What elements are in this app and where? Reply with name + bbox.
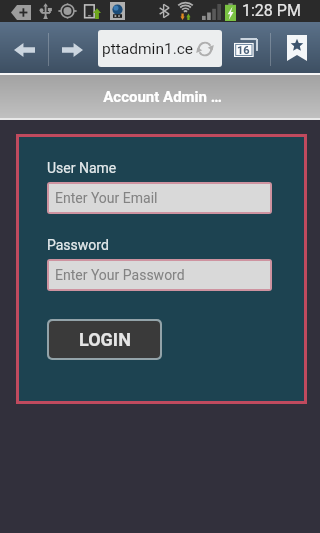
- staticText: 16: [237, 44, 250, 57]
- staticText: User Name: [47, 160, 117, 176]
- button[interactable]: Enter Your Email: [49, 184, 270, 212]
- button[interactable]: pttadmin1.ce: [98, 30, 222, 67]
- staticText: pttadmin1.ce: [102, 40, 194, 58]
- staticText: LOGIN: [79, 329, 131, 350]
- button[interactable]: Back: [3, 24, 45, 75]
- staticText: Enter Your Email: [55, 190, 158, 206]
- staticText: Enter Your Password: [55, 267, 185, 283]
- button[interactable]: LOGIN: [49, 321, 160, 358]
- staticText: Password: [47, 237, 109, 253]
- button[interactable]: Enter Your Password: [49, 261, 270, 289]
- staticText: 1:28 PM: [242, 1, 301, 20]
- button[interactable]: Forward: [51, 24, 93, 75]
- staticText: Account Admin …: [103, 88, 222, 106]
- button[interactable]: Reload: [196, 40, 214, 58]
- button[interactable]: Tabs: [230, 27, 262, 68]
- button[interactable]: Bookmarks: [281, 25, 313, 70]
